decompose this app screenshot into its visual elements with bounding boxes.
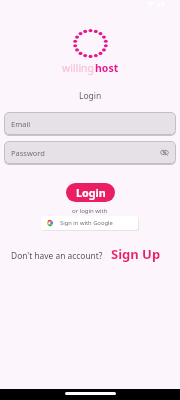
button[interactable]: Login bbox=[66, 183, 115, 202]
staticText: Email bbox=[11, 119, 31, 129]
staticText: Don't have an account? bbox=[11, 250, 103, 261]
staticText: Password bbox=[11, 148, 45, 158]
button[interactable]: Sign in with Google bbox=[41, 216, 138, 230]
other: Toggle password visibility bbox=[160, 149, 169, 156]
button[interactable]: Password bbox=[4, 141, 176, 164]
staticText: host bbox=[95, 61, 119, 75]
staticText: willing bbox=[62, 61, 95, 75]
button[interactable]: Email bbox=[4, 112, 176, 135]
staticText: Sign in with Google bbox=[60, 219, 113, 227]
staticText: Login bbox=[76, 185, 106, 200]
staticText: Login bbox=[79, 90, 102, 102]
button[interactable]: Sign Up bbox=[111, 245, 161, 263]
staticText: or login with bbox=[72, 207, 108, 215]
